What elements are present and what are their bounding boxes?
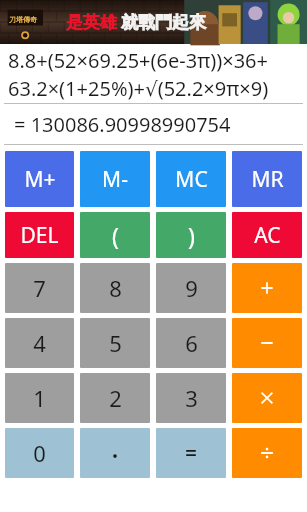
staticText: = 130086.90998990754 bbox=[14, 111, 231, 138]
button[interactable]: 5 bbox=[80, 318, 150, 368]
staticText: 1 bbox=[33, 383, 46, 413]
staticText: 4 bbox=[33, 328, 46, 358]
button[interactable]: Equals bbox=[156, 428, 226, 478]
button[interactable]: MC bbox=[156, 151, 226, 207]
staticText: ( bbox=[112, 220, 119, 251]
button[interactable]: MR bbox=[232, 151, 302, 207]
staticText: MC bbox=[175, 165, 208, 194]
button[interactable]: M- bbox=[80, 151, 150, 207]
staticText: 5 bbox=[109, 328, 122, 358]
staticText: LG QuickMemo bbox=[207, 476, 301, 494]
button[interactable]: 4 bbox=[5, 318, 74, 368]
staticText: 3 bbox=[185, 383, 198, 413]
button[interactable]: M+ bbox=[5, 151, 74, 207]
staticText: 7 bbox=[33, 273, 46, 303]
button[interactable]: Plus bbox=[232, 263, 302, 313]
staticText: 就戰鬥起來 bbox=[121, 12, 206, 33]
staticText: 6 bbox=[185, 328, 198, 358]
button[interactable]: 3 bbox=[156, 373, 226, 423]
staticText: 是英雄 bbox=[66, 12, 117, 33]
staticText: 9 bbox=[185, 273, 198, 303]
button[interactable]: Multiply bbox=[232, 373, 302, 423]
button[interactable]: 2 bbox=[80, 373, 150, 423]
staticText: 2 bbox=[109, 383, 122, 413]
button[interactable]: 0 bbox=[5, 428, 74, 478]
staticText: 0 bbox=[33, 438, 46, 468]
staticText: DEL bbox=[20, 221, 59, 250]
button[interactable]: DEL bbox=[5, 212, 74, 258]
staticText: 8.8+(52×69.25+(6e-3π))×36+ 63.2×(1+25%)+… bbox=[8, 47, 269, 101]
button[interactable]: 9 bbox=[156, 263, 226, 313]
staticText: MR bbox=[251, 165, 284, 194]
button[interactable]: AC bbox=[232, 212, 302, 258]
staticText: AC bbox=[254, 221, 281, 250]
button[interactable]: 6 bbox=[156, 318, 226, 368]
button[interactable]: ( bbox=[80, 212, 150, 258]
button[interactable]: Divide bbox=[232, 428, 302, 478]
staticText: M+ bbox=[24, 165, 56, 194]
button[interactable]: ) bbox=[156, 212, 226, 258]
button[interactable]: 8 bbox=[80, 263, 150, 313]
staticText: 刀塔傳奇 bbox=[9, 15, 37, 24]
button[interactable]: 7 bbox=[5, 263, 74, 313]
staticText: 8 bbox=[109, 273, 122, 303]
button[interactable]: 1 bbox=[5, 373, 74, 423]
button[interactable]: Decimal point bbox=[80, 428, 150, 478]
button[interactable]: Minus bbox=[232, 318, 302, 368]
staticText: ) bbox=[188, 220, 195, 251]
staticText: M- bbox=[102, 165, 128, 194]
